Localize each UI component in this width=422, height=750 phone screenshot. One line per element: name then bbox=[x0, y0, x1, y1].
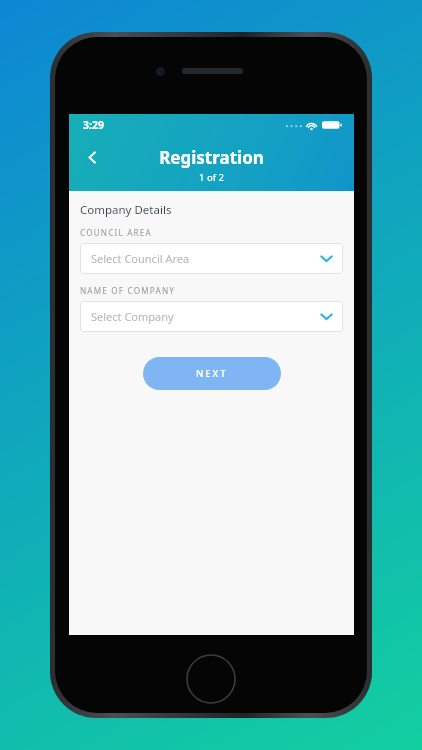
staticText: Select Company bbox=[91, 309, 174, 324]
button[interactable]: Back bbox=[75, 140, 109, 174]
button[interactable]: Select Company bbox=[80, 301, 343, 332]
staticText: Registration bbox=[69, 146, 354, 169]
staticText: 3:29 bbox=[83, 118, 104, 132]
button[interactable]: Select Council Area bbox=[80, 243, 343, 274]
staticText: NEXT bbox=[196, 367, 228, 380]
button[interactable]: NEXT bbox=[143, 357, 281, 390]
staticText: 1 of 2 bbox=[69, 171, 354, 184]
staticText: Company Details bbox=[80, 202, 172, 218]
staticText: Select Council Area bbox=[91, 251, 190, 266]
staticText: COUNCIL AREA bbox=[80, 227, 152, 238]
staticText: NAME OF COMPANY bbox=[80, 285, 176, 296]
